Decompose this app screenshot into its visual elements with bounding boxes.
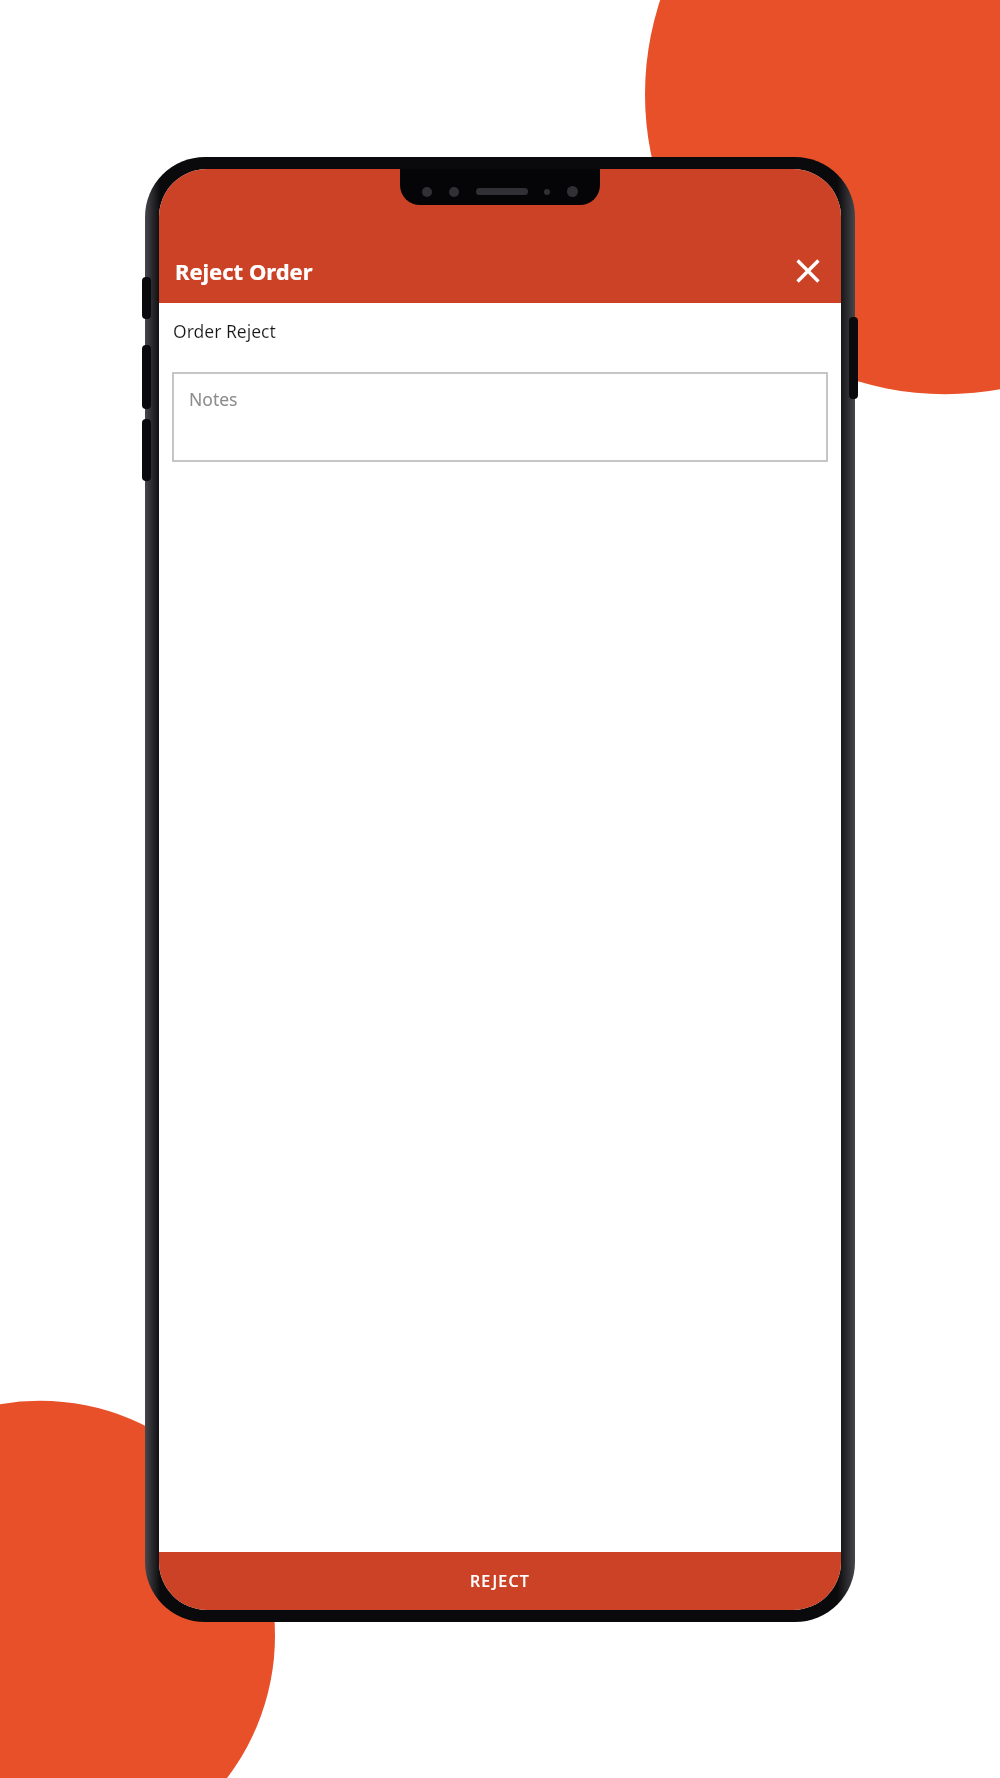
staticText: Order Reject (173, 319, 276, 343)
staticText: Reject Order (175, 256, 313, 286)
button[interactable]: Close (787, 250, 829, 292)
button[interactable]: REJECT (159, 1552, 841, 1610)
staticText: REJECT (470, 1570, 530, 1592)
button[interactable]: Notes (173, 373, 827, 461)
staticText: Notes (189, 387, 238, 411)
